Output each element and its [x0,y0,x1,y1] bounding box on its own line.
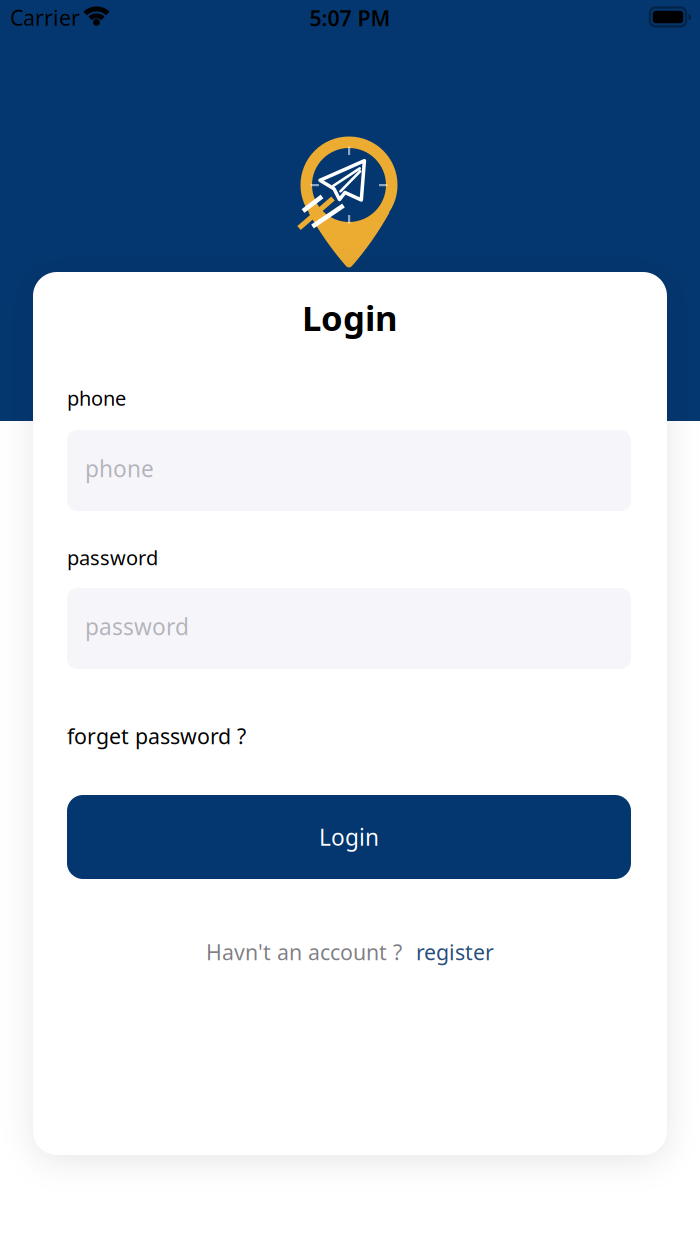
staticText: phone [85,453,154,483]
staticText: Login [302,294,398,340]
staticText: register [416,938,494,966]
staticText: password [85,611,189,641]
staticText: password [67,544,158,571]
button[interactable]: register [416,938,494,966]
staticText: Havn't an account ? [206,938,402,966]
button[interactable]: Login [67,795,631,879]
button[interactable]: phone [67,430,631,511]
staticText: Carrier [10,3,80,32]
staticText: Login [319,822,379,852]
button[interactable]: password [67,588,631,669]
staticText: 5:07 PM [309,4,390,32]
staticText: forget password ? [67,722,246,750]
staticText: phone [67,385,126,411]
button[interactable]: forget password ? [67,722,246,750]
